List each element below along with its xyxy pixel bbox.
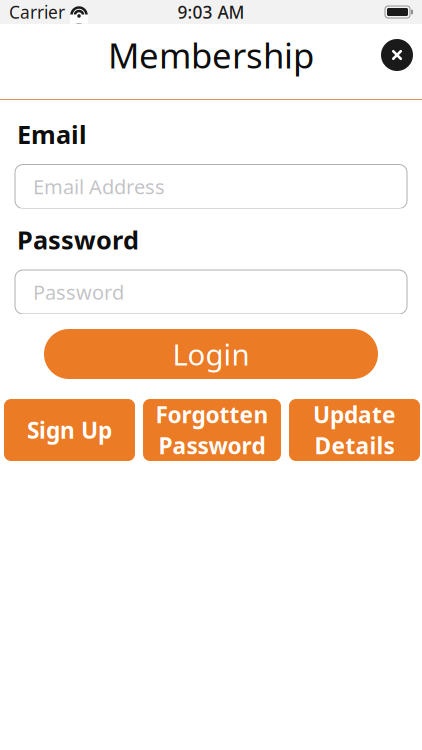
button[interactable]: Sign Up	[4, 399, 135, 461]
staticText: Forgotten	[155, 399, 268, 429]
button[interactable]: Password	[0, 270, 422, 314]
staticText: Sign Up	[27, 415, 112, 445]
staticText: Email	[17, 117, 87, 151]
staticText: Carrier	[9, 0, 65, 23]
staticText: Membership	[108, 31, 314, 79]
staticText: Password	[33, 279, 124, 305]
staticText: Password	[158, 430, 265, 461]
staticText: Update	[313, 399, 396, 429]
button[interactable]: Email Address	[0, 164, 422, 208]
button[interactable]: Forgotten	[143, 399, 281, 461]
button[interactable]: Close	[375, 33, 419, 77]
button[interactable]: Update	[289, 399, 420, 461]
staticText: Login	[172, 334, 249, 373]
staticText: 9:03 AM	[177, 0, 244, 23]
staticText: Password	[17, 222, 139, 257]
staticText: Email Address	[33, 173, 165, 200]
staticText: Details	[314, 430, 394, 461]
button[interactable]: Login	[0, 329, 422, 379]
